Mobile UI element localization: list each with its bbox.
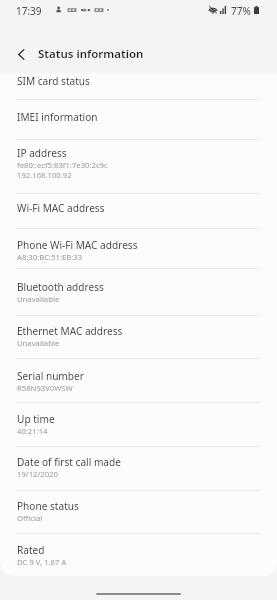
button[interactable]: SIM card status (0, 72, 277, 99)
staticText: 192.168.100.92 (17, 170, 72, 180)
button[interactable]: Phone status (0, 491, 277, 533)
staticText: 17:39 (16, 4, 42, 18)
staticText: SIM card status (17, 74, 90, 88)
staticText: fe80::ecf5:83f1:7e30:2c9c (17, 160, 108, 170)
staticText: Ethernet MAC address (17, 324, 123, 338)
button[interactable]: Bluetooth address (0, 269, 277, 315)
button[interactable]: Up time (0, 403, 277, 446)
staticText: Unavailable (17, 294, 60, 304)
staticText: Phone status (17, 499, 79, 513)
staticText: IMEI information (17, 110, 98, 124)
button[interactable]: Date of first call made (0, 447, 277, 490)
staticText: A8:30:BC:51:EB:33 (17, 252, 83, 262)
staticText: Status information (38, 46, 144, 62)
staticText: Rated (17, 543, 45, 557)
staticText: IP address (17, 146, 67, 160)
staticText: Serial number (17, 369, 84, 383)
staticText: Bluetooth address (17, 280, 104, 294)
staticText: 40:21:14 (17, 426, 48, 436)
button[interactable]: Rated (0, 534, 277, 576)
staticText: Date of first call made (17, 455, 121, 469)
staticText: R58N93V0WSW (17, 383, 73, 393)
staticText: 77% (231, 4, 251, 18)
staticText: Phone Wi-Fi MAC address (17, 238, 138, 252)
button[interactable]: Phone Wi-Fi MAC address (0, 229, 277, 268)
staticText: Official (17, 513, 43, 523)
staticText: Up time (17, 412, 55, 426)
staticText: Unavailable (17, 338, 60, 348)
button[interactable]: Ethernet MAC address (0, 316, 277, 358)
button[interactable]: Wi-Fi MAC address (0, 194, 277, 228)
staticText: 19/12/2020 (17, 469, 58, 479)
button[interactable]: Serial number (0, 359, 277, 402)
staticText: DC 9 V, 1.67 A (17, 557, 67, 567)
staticText: Wi-Fi MAC address (17, 201, 105, 215)
button[interactable]: IP address (0, 140, 277, 193)
button[interactable]: IMEI information (0, 100, 277, 139)
button[interactable]: Navigate up (9, 42, 33, 66)
